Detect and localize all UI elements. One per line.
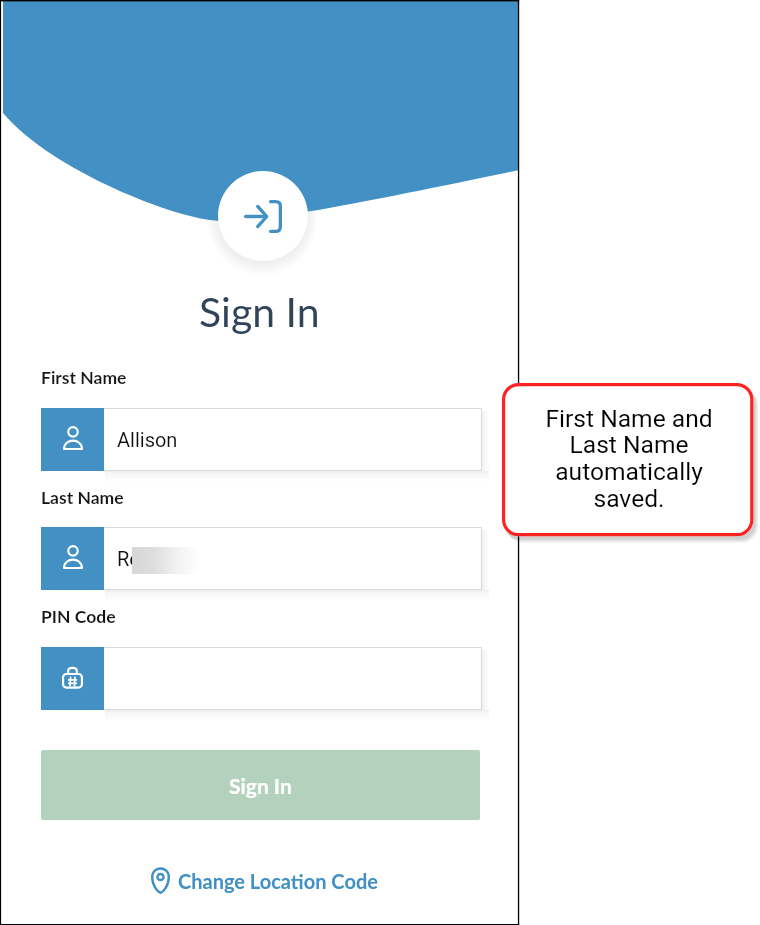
staticText: Change Location Code xyxy=(178,869,378,893)
staticText: PIN Code xyxy=(41,606,116,627)
button[interactable]: Re xyxy=(41,527,482,590)
staticText: Last Name xyxy=(41,487,124,508)
staticText: Allison xyxy=(117,428,178,451)
staticText: Sign In xyxy=(199,287,320,336)
staticText: First Name and Last Name automatically s… xyxy=(545,404,713,513)
staticText: Sign In xyxy=(229,773,292,798)
staticText: First Name xyxy=(41,367,127,388)
button[interactable] xyxy=(41,647,482,710)
button[interactable]: Change Location Code xyxy=(147,863,382,898)
staticText: Re xyxy=(117,547,140,570)
button[interactable]: Allison xyxy=(41,408,482,471)
button[interactable]: Sign In xyxy=(41,750,480,820)
button[interactable]: Sign in xyxy=(218,171,308,261)
